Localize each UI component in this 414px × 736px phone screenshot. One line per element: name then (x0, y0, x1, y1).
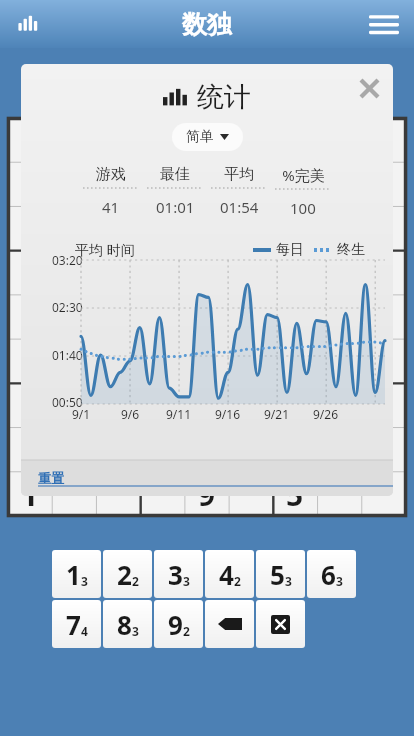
staticText: 100 (290, 198, 316, 218)
staticText: 1 (66, 557, 81, 592)
button[interactable]: 重置 (38, 470, 393, 487)
staticText: %完美 (282, 165, 325, 185)
staticText: 4 (81, 623, 88, 639)
staticText: 数独 (182, 9, 232, 40)
staticText: 9/11 (166, 406, 192, 422)
staticText: 3 (168, 557, 183, 592)
staticText: 2 (117, 557, 132, 592)
staticText: 3 (81, 573, 88, 589)
button[interactable]: 简单 (172, 123, 243, 151)
staticText: 5 (286, 474, 304, 515)
staticText: 41 (102, 197, 120, 217)
staticText: 3 (336, 573, 343, 589)
button[interactable]: 2 (103, 550, 152, 598)
staticText: 平均 (224, 165, 254, 184)
staticText: 01:54 (220, 197, 259, 217)
staticText: 9 (198, 474, 216, 515)
button[interactable]: Statistics (6, 2, 50, 46)
staticText: 9/6 (121, 406, 140, 422)
staticText: 2 (234, 573, 241, 589)
staticText: 02:30 (52, 299, 83, 315)
staticText: 2 (183, 623, 190, 639)
staticText: 3 (132, 623, 139, 639)
staticText: 5 (270, 557, 285, 592)
staticText: 01:40 (52, 347, 83, 363)
staticText: 7 (66, 607, 81, 642)
staticText: 01:01 (156, 197, 195, 217)
button[interactable]: Clear (256, 600, 305, 648)
staticText: 终生 (337, 241, 365, 259)
staticText: 9/26 (313, 406, 339, 422)
staticText: 9/16 (215, 406, 241, 422)
staticText: 3 (183, 573, 190, 589)
button[interactable]: 6 (307, 550, 356, 598)
staticText: 最佳 (160, 165, 190, 184)
button[interactable]: 3 (154, 550, 203, 598)
button[interactable]: 4 (205, 550, 254, 598)
staticText: 2 (132, 573, 139, 589)
button[interactable]: Backspace (205, 600, 254, 648)
button[interactable]: Menu (360, 0, 408, 48)
staticText: 每日 (276, 241, 304, 259)
button[interactable]: 8 (103, 600, 152, 648)
button[interactable]: 1 (52, 550, 101, 598)
staticText: 统计 (197, 80, 251, 114)
button[interactable]: 7 (52, 600, 101, 648)
button[interactable]: Close (349, 68, 389, 108)
staticText: 4 (219, 557, 234, 592)
staticText: 平均 时间 (75, 240, 135, 259)
staticText: 9/1 (72, 406, 91, 422)
staticText: 重置 (38, 470, 64, 486)
button[interactable]: 9 (154, 600, 203, 648)
staticText: 9 (168, 607, 183, 642)
staticText: 9/21 (264, 406, 290, 422)
staticText: 3 (285, 573, 292, 589)
staticText: 6 (321, 557, 336, 592)
staticText: 简单 (186, 128, 214, 146)
button[interactable]: 5 (256, 550, 305, 598)
staticText: 8 (117, 607, 132, 642)
staticText: 00:50 (52, 394, 83, 410)
staticText: 03:20 (52, 252, 83, 268)
staticText: 游戏 (96, 165, 126, 184)
staticText: 1 (21, 474, 39, 515)
